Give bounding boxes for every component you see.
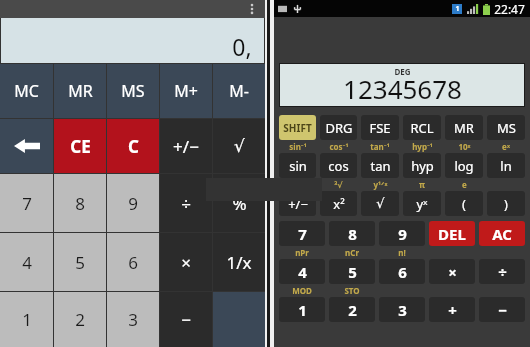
staticText: 3 — [128, 308, 138, 331]
button[interactable]: 4 — [279, 259, 325, 284]
button[interactable]: √ — [213, 119, 265, 173]
staticText: ) — [504, 195, 508, 213]
staticText: 0, — [232, 31, 252, 62]
button[interactable]: 4 — [0, 233, 53, 291]
staticText: 7 — [298, 224, 307, 244]
staticText: 1 — [298, 300, 307, 320]
button[interactable]: DEL — [429, 221, 475, 246]
staticText: C — [128, 135, 139, 158]
staticText: 1 — [22, 308, 32, 331]
staticText: 7 — [22, 192, 32, 215]
staticText: CE — [70, 135, 91, 158]
button[interactable]: MR — [54, 64, 106, 118]
button[interactable]: M+ — [160, 64, 212, 118]
button[interactable]: 3 — [379, 297, 425, 322]
staticText: ³√ — [334, 179, 343, 190]
button[interactable]: 9 — [107, 174, 159, 232]
button[interactable]: tan — [361, 153, 399, 178]
button[interactable]: − — [160, 292, 212, 347]
button[interactable]: 3 — [107, 292, 159, 347]
button[interactable]: hyp — [403, 153, 441, 178]
staticText: SHIFT — [283, 121, 312, 135]
button[interactable]: ÷ — [160, 174, 212, 232]
button[interactable]: √ — [361, 191, 399, 216]
staticText: nCr — [345, 247, 359, 258]
staticText: DEL — [438, 224, 466, 244]
button[interactable]: % — [213, 174, 265, 232]
staticText: +/− — [173, 135, 199, 158]
staticText: × — [181, 251, 191, 274]
staticText: − — [498, 300, 507, 320]
button[interactable]: 8 — [54, 174, 106, 232]
staticText: MS — [497, 119, 516, 137]
button[interactable]: × — [160, 233, 212, 291]
button[interactable]: MR — [445, 115, 483, 140]
button[interactable]: RCL — [403, 115, 441, 140]
staticText: − — [181, 308, 191, 331]
button[interactable]: ) — [487, 191, 525, 216]
staticText: eˣ — [502, 141, 510, 152]
button[interactable]: 2 — [329, 297, 375, 322]
button[interactable]: AC — [479, 221, 525, 246]
button[interactable]: yˣ — [403, 191, 441, 216]
staticText: MC — [14, 80, 39, 102]
button[interactable]: 5 — [329, 259, 375, 284]
staticText: 10ˣ — [458, 141, 471, 152]
staticText: cos — [328, 157, 349, 175]
button[interactable]: ( — [445, 191, 483, 216]
staticText: n! — [398, 247, 406, 258]
button[interactable]: 1 — [0, 292, 53, 347]
button[interactable]: 5 — [54, 233, 106, 291]
staticText: tan⁻¹ — [370, 141, 390, 152]
staticText: cos⁻¹ — [329, 141, 349, 152]
button[interactable]: MS — [107, 64, 159, 118]
button[interactable]: 7 — [279, 221, 325, 246]
staticText: 3 — [398, 300, 407, 320]
staticText: ÷ — [181, 192, 191, 215]
staticText: π — [419, 179, 425, 190]
staticText: × — [448, 262, 457, 282]
staticText: 5 — [75, 251, 85, 274]
button[interactable]: − — [479, 297, 525, 322]
button[interactable]: MS — [487, 115, 525, 140]
button[interactable]: C — [107, 119, 159, 173]
button[interactable]: FSE — [361, 115, 399, 140]
button[interactable]: DRG — [320, 115, 357, 140]
button[interactable]: 6 — [379, 259, 425, 284]
staticText: y¹ᐟˣ — [373, 179, 388, 190]
staticText: sin⁻¹ — [289, 141, 307, 152]
button[interactable]: 6 — [107, 233, 159, 291]
button[interactable]: +/− — [160, 119, 212, 173]
staticText: 9 — [128, 192, 138, 215]
staticText: e — [462, 179, 467, 190]
button[interactable]: CE — [54, 119, 106, 173]
button[interactable]: Backspace — [0, 119, 53, 173]
staticText: x² — [333, 195, 345, 213]
button[interactable]: cos — [320, 153, 357, 178]
button[interactable]: x² — [320, 191, 357, 216]
staticText: 8 — [348, 224, 357, 244]
button[interactable]: MC — [0, 64, 53, 118]
button[interactable]: More options — [245, 2, 259, 16]
button[interactable]: 8 — [329, 221, 375, 246]
staticText: 1 — [455, 4, 460, 14]
button[interactable]: sin — [279, 153, 316, 178]
button[interactable]: ÷ — [479, 259, 525, 284]
staticText: M+ — [174, 80, 198, 102]
button[interactable]: + — [429, 297, 475, 322]
button[interactable]: +/− — [279, 191, 316, 216]
button[interactable]: 1/x — [213, 233, 265, 291]
button[interactable]: 2 — [54, 292, 106, 347]
button[interactable]: 1 — [279, 297, 325, 322]
button[interactable]: × — [429, 259, 475, 284]
button[interactable]: log — [445, 153, 483, 178]
button[interactable]: 7 — [0, 174, 53, 232]
button[interactable]: 9 — [379, 221, 425, 246]
button[interactable]: SHIFT — [279, 115, 316, 140]
staticText: 2 — [348, 300, 357, 320]
button[interactable]: M- — [213, 64, 265, 118]
staticText: DEG — [394, 66, 411, 77]
button[interactable]: ln — [487, 153, 525, 178]
